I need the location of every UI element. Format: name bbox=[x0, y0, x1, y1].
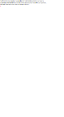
staticText: X bbox=[0, 5, 1, 7]
staticText: Tu iPhone se actualizará a la última ver… bbox=[0, 0, 46, 5]
